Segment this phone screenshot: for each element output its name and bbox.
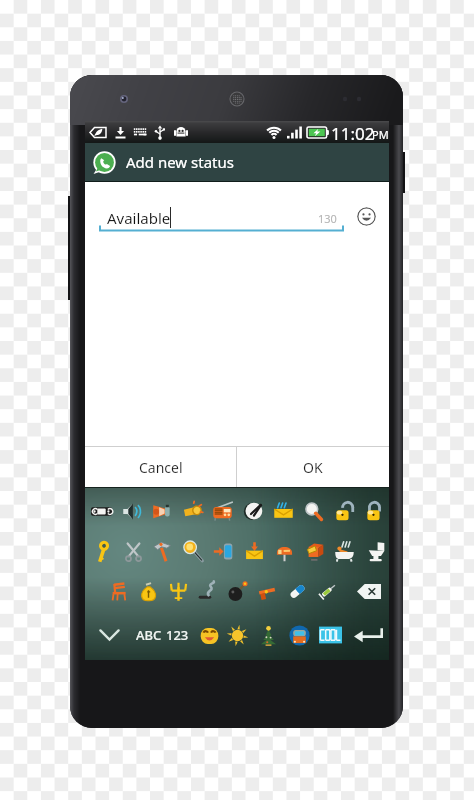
staticText: Available bbox=[107, 208, 171, 228]
button[interactable]: Unlocked bbox=[330, 498, 356, 524]
button[interactable]: Add new status bbox=[85, 143, 389, 181]
button[interactable]: Loudspeaker bbox=[149, 498, 175, 524]
staticText: OK bbox=[303, 458, 323, 477]
button[interactable]: Backspace bbox=[354, 579, 384, 603]
button[interactable]: Toilet bbox=[362, 538, 388, 564]
staticText: PM bbox=[372, 127, 389, 142]
button[interactable]: Celebration bbox=[255, 622, 281, 648]
button[interactable]: 123 bbox=[166, 626, 189, 644]
button[interactable]: Radio bbox=[209, 498, 235, 524]
button[interactable]: Transport bbox=[286, 622, 312, 648]
button[interactable]: OK bbox=[237, 447, 389, 487]
button[interactable]: Bomb bbox=[224, 578, 250, 604]
button[interactable]: Pill bbox=[284, 578, 310, 604]
button[interactable]: Cancel bbox=[85, 447, 236, 487]
staticText: ABC bbox=[136, 626, 162, 644]
staticText: 123 bbox=[166, 626, 189, 644]
button[interactable]: Hammer bbox=[150, 538, 176, 564]
button[interactable]: Smileys bbox=[196, 622, 222, 648]
staticText: 130 bbox=[318, 211, 337, 226]
button[interactable]: Pistol bbox=[254, 578, 280, 604]
button[interactable]: Inbox tray bbox=[241, 538, 267, 564]
button[interactable]: Flashlight bbox=[180, 538, 206, 564]
button[interactable]: Speaker bbox=[119, 498, 145, 524]
button[interactable]: Pipe bbox=[194, 578, 220, 604]
button[interactable]: Incoming envelope bbox=[270, 498, 296, 524]
staticText: Cancel bbox=[139, 458, 183, 477]
button[interactable]: Symbols bbox=[317, 622, 343, 648]
button[interactable]: Key bbox=[89, 538, 115, 564]
button[interactable]: ABC bbox=[136, 626, 162, 644]
button[interactable]: Open mailbox bbox=[301, 538, 327, 564]
button[interactable]: Emoji bbox=[357, 207, 376, 226]
button[interactable]: Nature bbox=[224, 622, 250, 648]
staticText: Add new status bbox=[126, 152, 234, 172]
button[interactable]: Syringe bbox=[314, 578, 340, 604]
button[interactable]: Closed mailbox bbox=[271, 538, 297, 564]
button[interactable]: Trident bbox=[165, 578, 191, 604]
button[interactable]: Bathtub bbox=[331, 538, 357, 564]
button[interactable]: Chair bbox=[105, 578, 131, 604]
button[interactable]: Satellite bbox=[240, 498, 266, 524]
button[interactable]: Enter bbox=[351, 622, 385, 648]
button[interactable]: Hide keyboard bbox=[93, 621, 125, 649]
button[interactable]: Megaphone bbox=[179, 498, 205, 524]
button[interactable]: Money bag bbox=[135, 578, 161, 604]
button[interactable]: Locked bbox=[361, 498, 387, 524]
button[interactable]: Videocassette bbox=[88, 498, 114, 524]
button[interactable]: Mobile with arrow bbox=[210, 538, 236, 564]
button[interactable]: Search bbox=[300, 498, 326, 524]
staticText: 11:02 bbox=[331, 122, 375, 144]
button[interactable]: Scissors bbox=[120, 538, 146, 564]
